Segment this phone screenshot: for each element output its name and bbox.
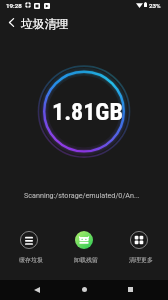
button[interactable]: [75, 231, 93, 249]
staticText: 卸载残留: [74, 256, 98, 264]
button[interactable]: Back: [0, 10, 22, 34]
staticText: 23%: [149, 2, 161, 9]
button[interactable]: Home: [75, 280, 93, 299]
staticText: 19:28: [6, 2, 22, 9]
button[interactable]: [130, 231, 148, 249]
button[interactable]: Recents: [121, 280, 139, 299]
staticText: Scanning:/storage/emulated/0/An...: [24, 191, 140, 199]
staticText: 1.81GB: [52, 98, 123, 126]
staticText: 清理更多: [129, 256, 153, 264]
button[interactable]: Back: [28, 280, 46, 299]
button[interactable]: [20, 231, 38, 249]
staticText: 缓存垃圾: [19, 256, 43, 264]
staticText: 垃圾清理: [21, 17, 69, 32]
